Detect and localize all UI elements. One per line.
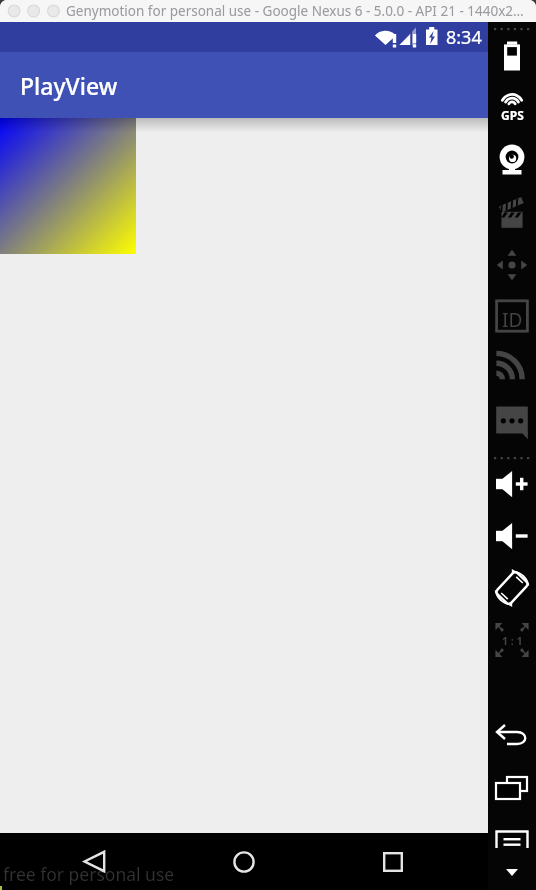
button[interactable]: Back	[66, 833, 122, 890]
button[interactable]: PlayView	[0, 52, 488, 118]
staticText: ID	[502, 307, 523, 333]
staticText: 8:34	[446, 25, 482, 50]
button[interactable]: Gradient view	[0, 118, 136, 254]
staticText: GPS	[501, 107, 524, 123]
staticText: 1 : 1	[502, 634, 523, 648]
staticText: Genymotion for personal use - Google Nex…	[66, 2, 524, 20]
button[interactable]: Recent apps	[365, 833, 421, 890]
staticText: free for personal use	[3, 862, 175, 886]
staticText: PlayView	[20, 70, 118, 101]
button[interactable]: Home	[216, 833, 272, 890]
